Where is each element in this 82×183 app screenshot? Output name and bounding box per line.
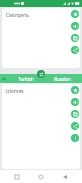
staticText: Смотреть (6, 12, 30, 19)
staticText: Russian (54, 76, 71, 82)
button[interactable]: Home (34, 170, 48, 183)
button[interactable]: Listen (71, 98, 79, 106)
button[interactable]: Share (71, 122, 79, 130)
button[interactable]: Recent apps (10, 170, 24, 183)
button[interactable]: More options (71, 134, 79, 142)
button[interactable]: Share (71, 46, 79, 54)
staticText: Turkish (18, 76, 34, 82)
button[interactable]: Favorite (71, 86, 79, 94)
button[interactable]: Favorite (71, 10, 79, 18)
button[interactable]: Listen (71, 22, 79, 30)
button[interactable]: Back (58, 170, 72, 183)
staticText: izlemek (6, 88, 24, 95)
button[interactable]: Copy (71, 110, 79, 118)
button[interactable]: Turkish (8, 74, 44, 83)
button[interactable]: Copy (71, 34, 79, 42)
button[interactable]: Swap languages (37, 70, 45, 78)
button[interactable]: Russian (44, 74, 80, 83)
button[interactable]: Menu (0, 74, 8, 83)
